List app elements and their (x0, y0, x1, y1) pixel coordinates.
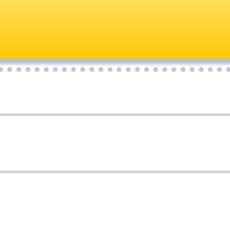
button[interactable]: Note body, tap to edit (0, 58, 230, 230)
button[interactable]: Note colour / header (0, 0, 230, 58)
